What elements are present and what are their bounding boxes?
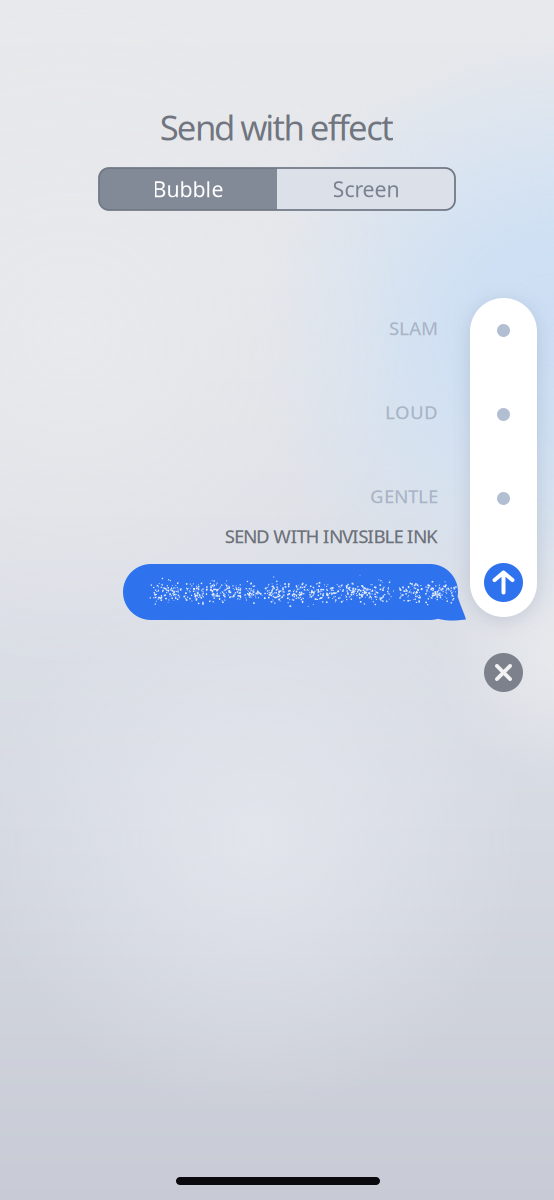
staticText: Screen: [332, 175, 399, 203]
button[interactable]: Send: [484, 563, 523, 602]
button[interactable]: Screen: [277, 168, 455, 210]
staticText: Bubble: [152, 175, 223, 203]
staticText: SEND WITH INVISIBLE INK: [225, 524, 438, 548]
button[interactable]: Close: [484, 653, 523, 692]
staticText: Send with effect: [160, 104, 394, 150]
staticText: LOUD: [385, 400, 438, 424]
staticText: GENTLE: [370, 484, 438, 508]
button[interactable]: Bubble: [99, 168, 277, 210]
staticText: SLAM: [389, 316, 438, 340]
